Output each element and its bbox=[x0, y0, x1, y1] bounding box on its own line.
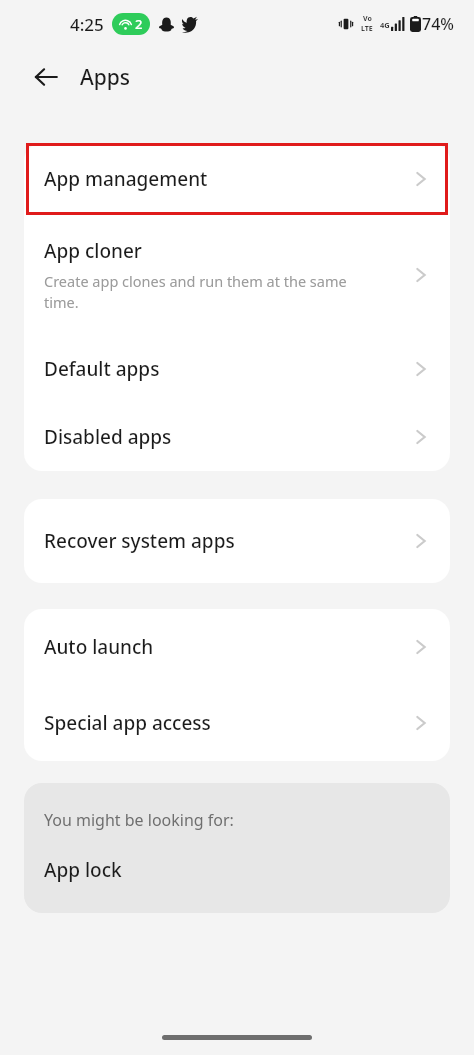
staticText: Special app access bbox=[44, 710, 211, 736]
staticText: Vo bbox=[363, 14, 372, 24]
staticText: Create app clones and run them at the sa… bbox=[44, 271, 383, 313]
button[interactable]: App cloner bbox=[24, 215, 450, 335]
button[interactable]: App lock bbox=[44, 857, 430, 883]
staticText: Recover system apps bbox=[44, 528, 235, 554]
button[interactable]: Recover system apps bbox=[24, 499, 450, 583]
staticText: App lock bbox=[44, 857, 122, 883]
button[interactable]: App management bbox=[24, 143, 450, 215]
button[interactable]: Special app access bbox=[24, 685, 450, 761]
staticText: 4G bbox=[380, 20, 390, 30]
staticText: Disabled apps bbox=[44, 424, 172, 450]
staticText: Default apps bbox=[44, 356, 160, 382]
staticText: 74% bbox=[422, 13, 454, 35]
button[interactable]: Back bbox=[28, 59, 64, 95]
staticText: App cloner bbox=[44, 238, 142, 264]
button[interactable]: Auto launch bbox=[24, 609, 450, 685]
staticText: Apps bbox=[80, 63, 131, 92]
button[interactable]: Default apps bbox=[24, 335, 450, 403]
button[interactable]: Disabled apps bbox=[24, 403, 450, 471]
staticText: 4:25 bbox=[70, 13, 104, 36]
staticText: You might be looking for: bbox=[44, 809, 234, 831]
staticText: 2 bbox=[135, 15, 143, 33]
staticText: Auto launch bbox=[44, 634, 154, 660]
staticText: App management bbox=[44, 166, 208, 192]
staticText: LTE bbox=[361, 24, 373, 34]
